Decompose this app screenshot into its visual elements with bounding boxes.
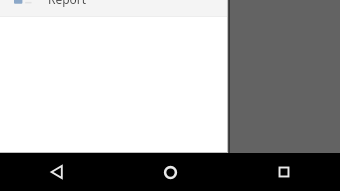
button[interactable]: Home — [114, 153, 227, 191]
staticText: Report — [48, 0, 87, 7]
button[interactable]: Report — [0, 0, 227, 16]
button[interactable]: Recent apps — [227, 153, 340, 191]
button[interactable]: Back — [0, 153, 114, 191]
